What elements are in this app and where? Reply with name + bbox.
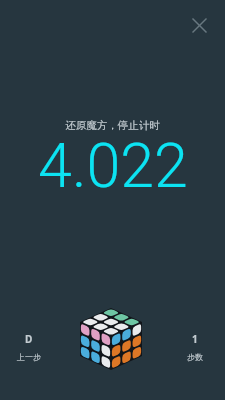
staticText: 4.022	[38, 130, 188, 201]
staticText: 步数	[187, 352, 203, 362]
button[interactable]: D	[5, 332, 53, 362]
button[interactable]: Close	[183, 9, 216, 42]
staticText: D	[25, 332, 33, 346]
staticText: 上一步	[17, 352, 41, 362]
button[interactable]: 1	[171, 332, 219, 362]
staticText: 1	[192, 332, 198, 346]
staticText: 还原魔方，停止计时	[65, 119, 160, 132]
